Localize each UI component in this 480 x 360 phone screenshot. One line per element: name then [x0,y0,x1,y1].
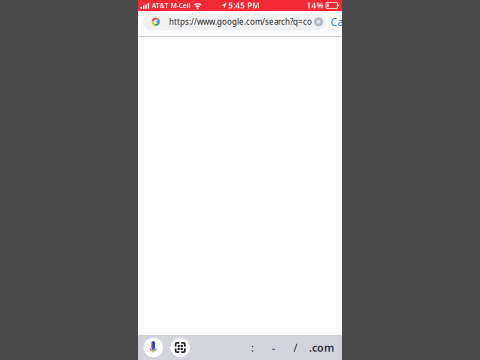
staticText: 5:45 PM [228,0,259,11]
staticText: 14% [306,0,323,11]
button[interactable]: Google Lens [170,338,190,357]
button[interactable]: https://www.google.com/search?q=co [142,13,326,30]
button[interactable]: : [242,337,262,357]
staticText: - [272,340,275,355]
button[interactable]: Cancel [326,15,364,29]
staticText: AT&T M-Cell [152,1,191,10]
staticText: / [293,340,297,355]
staticText: : [251,340,254,355]
button[interactable]: - [262,337,284,357]
staticText: https://www.google.com/search?q=co [169,16,312,27]
button[interactable]: .com [307,337,336,357]
button[interactable]: / [284,337,307,357]
button[interactable]: Voice search [143,338,163,357]
staticText: Cancel [330,15,364,29]
staticText: .com [309,340,334,355]
